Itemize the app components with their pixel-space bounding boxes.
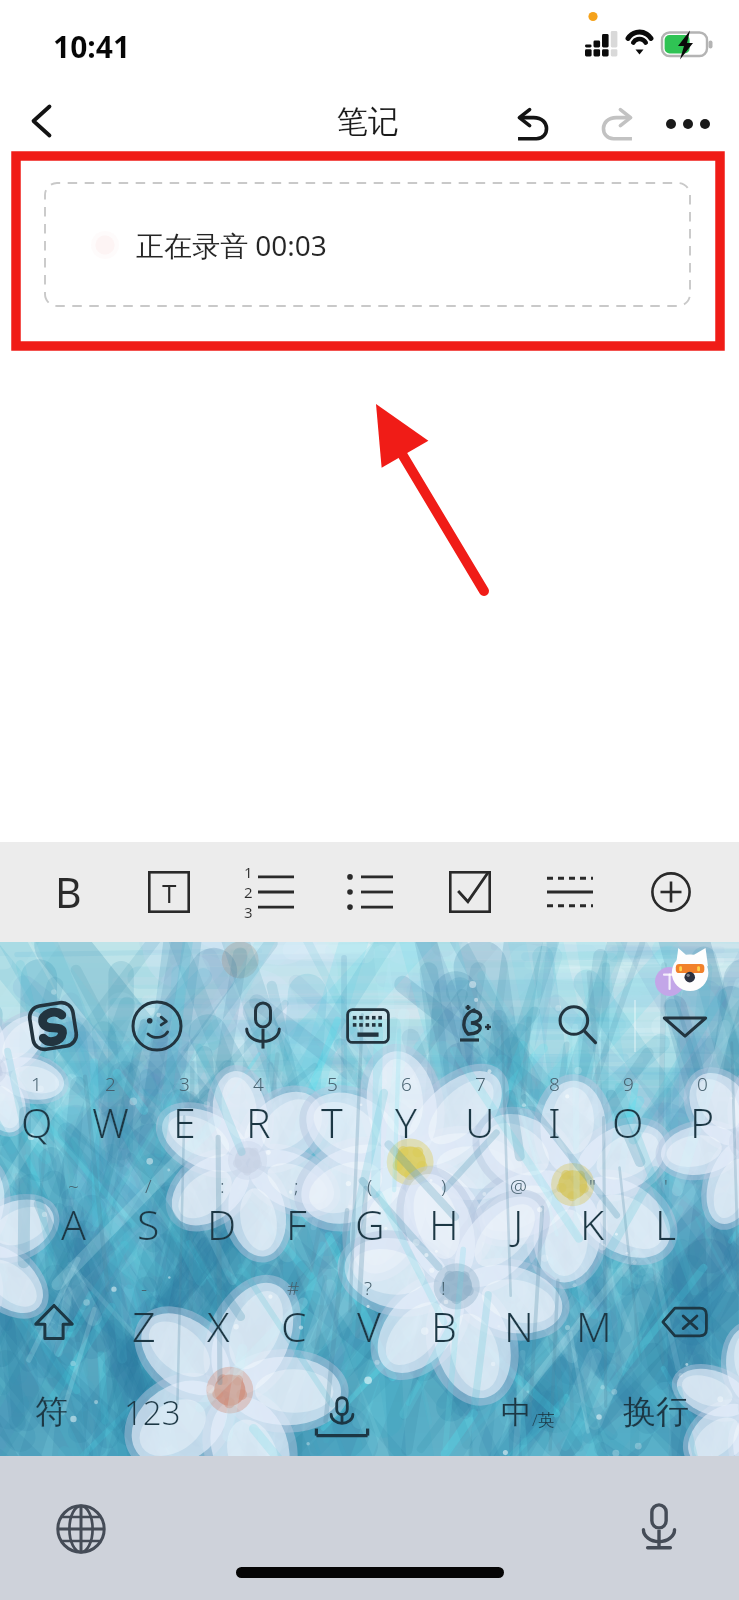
staticText: 1 (244, 862, 253, 882)
button[interactable]: 1 (0, 1062, 73, 1164)
button[interactable]: 4 (221, 1062, 295, 1164)
staticText: R (246, 1094, 271, 1150)
staticText: 3 (244, 902, 253, 922)
button[interactable]: Undo (503, 91, 563, 151)
button[interactable]: Delete (631, 1266, 739, 1368)
staticText: 中 (501, 1393, 532, 1432)
button[interactable]: Search (544, 992, 612, 1060)
button[interactable]: Emoji (123, 992, 191, 1060)
staticText: M (576, 1298, 612, 1354)
button[interactable]: N (481, 1266, 556, 1368)
staticText: ? (364, 1275, 373, 1301)
button[interactable]: New line (596, 1368, 716, 1456)
staticText: P (690, 1094, 715, 1150)
staticText: 符 (35, 1391, 68, 1433)
staticText: V (357, 1298, 381, 1354)
staticText: 2 (244, 882, 253, 902)
button[interactable]: : (185, 1164, 259, 1266)
button[interactable]: 2 (73, 1062, 147, 1164)
staticText: 10:41 (53, 26, 131, 67)
staticText: Z (132, 1298, 156, 1354)
staticText: ( (367, 1173, 373, 1199)
button[interactable]: Symbols (3, 1368, 99, 1456)
button[interactable]: Numbered list (231, 848, 307, 936)
staticText: : (220, 1173, 225, 1199)
staticText: 4 (253, 1071, 264, 1097)
staticText: O (612, 1094, 644, 1150)
button[interactable]: More options (658, 91, 718, 151)
button[interactable]: M (556, 1266, 631, 1368)
staticText: 9 (623, 1071, 634, 1097)
staticText: 3 (179, 1071, 190, 1097)
staticText: W (92, 1094, 129, 1150)
staticText: 换行 (623, 1391, 689, 1433)
staticText: G (355, 1196, 385, 1252)
button[interactable]: ? (331, 1266, 406, 1368)
button[interactable]: Bold (30, 848, 106, 936)
button[interactable]: @ (481, 1164, 555, 1266)
button[interactable]: ! (406, 1266, 481, 1368)
button[interactable]: 正在录音 00:03 (45, 183, 690, 306)
button[interactable]: ( (333, 1164, 407, 1266)
button[interactable]: ) (407, 1164, 481, 1266)
button[interactable]: 0 (665, 1062, 739, 1164)
button[interactable]: Shift (0, 1266, 107, 1368)
button[interactable]: " (555, 1164, 629, 1266)
button[interactable]: Text style (131, 848, 207, 936)
button[interactable]: Hide keyboard (651, 992, 719, 1060)
button[interactable]: - (107, 1266, 181, 1368)
staticText: 2 (105, 1071, 116, 1097)
button[interactable]: 9 (591, 1062, 665, 1164)
staticText: J (513, 1196, 524, 1252)
staticText: N (504, 1298, 534, 1354)
button[interactable]: ~ (36, 1164, 111, 1266)
staticText: 正在录音 00:03 (136, 226, 327, 264)
button[interactable]: Bullet list (332, 848, 408, 936)
staticText: Y (395, 1094, 417, 1150)
staticText: B (55, 864, 82, 920)
staticText: U (465, 1094, 495, 1150)
staticText: 笔记 (337, 102, 399, 141)
staticText: - (141, 1275, 148, 1301)
staticText: T (321, 1094, 343, 1150)
staticText: S (137, 1196, 160, 1252)
button[interactable]: # (256, 1266, 331, 1368)
button[interactable]: Space / voice input (237, 1368, 447, 1456)
staticText: E (173, 1094, 196, 1150)
button[interactable]: 5 (295, 1062, 369, 1164)
button[interactable]: Chinese / English (473, 1368, 583, 1456)
button[interactable]: Voice input (229, 992, 297, 1060)
button[interactable]: Horizontal rule (532, 848, 608, 936)
staticText: 7 (475, 1071, 486, 1097)
button[interactable]: X (181, 1266, 256, 1368)
button[interactable]: Keyboard layout (334, 992, 402, 1060)
button[interactable]: 8 (517, 1062, 591, 1164)
staticText: X (207, 1298, 230, 1354)
staticText: B (431, 1298, 457, 1354)
button[interactable]: Sogou input (19, 992, 87, 1060)
button[interactable]: Redo (587, 91, 647, 151)
staticText: 1 (31, 1071, 42, 1097)
staticText: I (548, 1094, 561, 1150)
staticText: ~ (68, 1173, 79, 1199)
button[interactable]: Checklist (432, 848, 508, 936)
staticText: /英 (532, 1408, 555, 1431)
staticText: 123 (124, 1390, 181, 1435)
button[interactable]: Handwriting (439, 992, 507, 1060)
button[interactable]: Numbers (97, 1368, 207, 1456)
button[interactable]: Insert (633, 848, 709, 936)
button[interactable]: Switch language (47, 1495, 115, 1563)
staticText: ; (294, 1173, 299, 1199)
button[interactable]: Back (14, 94, 68, 148)
staticText: 8 (549, 1071, 560, 1097)
staticText: D (207, 1196, 237, 1252)
button[interactable]: Dictation (625, 1493, 693, 1561)
button[interactable]: / (111, 1164, 185, 1266)
button[interactable]: ' (629, 1164, 703, 1266)
staticText: ! (441, 1275, 446, 1301)
staticText: @ (510, 1173, 527, 1199)
button[interactable]: 6 (369, 1062, 443, 1164)
button[interactable]: ; (259, 1164, 333, 1266)
button[interactable]: 7 (443, 1062, 517, 1164)
button[interactable]: 3 (147, 1062, 221, 1164)
